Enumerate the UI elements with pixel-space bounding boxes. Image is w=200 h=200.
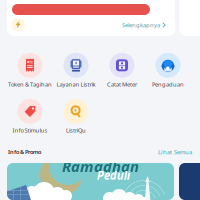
button[interactable]: Catat Meter [99, 53, 145, 88]
staticText: Peduli [97, 167, 130, 183]
staticText: Ramadhan [62, 156, 139, 176]
button[interactable]: Ramadhan [7, 163, 174, 200]
button[interactable]: Token & Tagihan [7, 53, 53, 88]
button[interactable]: Info Stimulus [7, 99, 53, 134]
staticText: Catat Meter [107, 80, 137, 88]
staticText: Info Stimulus [12, 126, 47, 134]
staticText: Token & Tagihan [8, 80, 52, 88]
button[interactable]: ListriQu [53, 99, 99, 134]
staticText: Layanan Listrik [56, 80, 95, 88]
staticText: Info & Promo [8, 148, 41, 156]
staticText: Selengkapnya [122, 21, 160, 29]
staticText: Lihat Semua [158, 148, 192, 156]
staticText: Pengaduan [152, 80, 184, 88]
button[interactable]: Layanan Listrik [53, 53, 99, 88]
button[interactable]: Selengkapnya [122, 21, 166, 28]
button[interactable]: Lihat Semua [158, 148, 192, 156]
staticText: ListriQu [66, 126, 86, 134]
button[interactable]: Pengaduan [145, 53, 191, 88]
